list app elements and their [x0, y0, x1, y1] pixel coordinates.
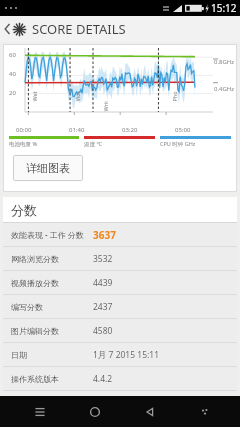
staticText: 操作系统版本: [11, 374, 59, 384]
staticText: 01:40: [69, 126, 85, 134]
staticText: 40: [9, 70, 16, 78]
staticText: 温度 ℃: [84, 140, 102, 148]
staticText: 05:00: [175, 126, 191, 134]
button[interactable]: Recent apps: [188, 396, 222, 427]
staticText: 60: [9, 51, 16, 59]
staticText: 20: [9, 89, 16, 97]
button[interactable]: 编写分数: [3, 295, 237, 318]
staticText: Video Playback: [73, 91, 80, 101]
staticText: 0.4GHz: [214, 85, 235, 93]
button[interactable]: Back: [133, 396, 167, 427]
staticText: 00:00: [16, 126, 32, 134]
button[interactable]: 效能表现 - 工作 分数: [3, 223, 237, 246]
button[interactable]: 视频播放分数: [3, 271, 237, 294]
staticText: 03:20: [122, 126, 138, 134]
staticText: 1月 7 2015 15:11: [93, 349, 160, 361]
staticText: 3532: [93, 253, 113, 265]
other: Back: [3, 22, 12, 36]
staticText: 15:12: [211, 1, 237, 15]
staticText: 图片编辑分数: [11, 326, 59, 336]
staticText: 分数: [11, 202, 37, 218]
staticText: Writing: [101, 101, 108, 111]
staticText: 4.4.2: [93, 373, 113, 385]
staticText: 网络浏览分数: [11, 254, 59, 264]
staticText: CPU 时钟 GHz: [160, 140, 196, 148]
staticText: Photo Editing: [170, 91, 177, 101]
staticText: 编写分数: [11, 302, 43, 312]
staticText: 日期: [11, 350, 27, 360]
button[interactable]: Back: [0, 16, 240, 42]
button[interactable]: 详细图表: [13, 155, 83, 181]
staticText: 0.8GHz: [214, 58, 235, 66]
button[interactable]: 图片编辑分数: [3, 319, 237, 342]
button[interactable]: 网络浏览分数: [3, 247, 237, 270]
staticText: Web Browsing: [30, 91, 37, 101]
staticText: 3637: [93, 228, 116, 242]
staticText: 4439: [93, 277, 113, 289]
staticText: 4580: [93, 325, 113, 337]
staticText: 详细图表: [26, 161, 70, 175]
staticText: 2437: [93, 301, 113, 313]
button[interactable]: 操作系统版本: [3, 367, 237, 390]
staticText: 效能表现 - 工作 分数: [11, 229, 84, 240]
button[interactable]: Home: [78, 396, 112, 427]
staticText: SCORE DETAILS: [32, 20, 126, 38]
staticText: 视频播放分数: [11, 278, 59, 288]
button[interactable]: Menu: [23, 396, 57, 427]
staticText: 电池电量 %: [9, 140, 38, 148]
button[interactable]: 日期: [3, 343, 237, 366]
